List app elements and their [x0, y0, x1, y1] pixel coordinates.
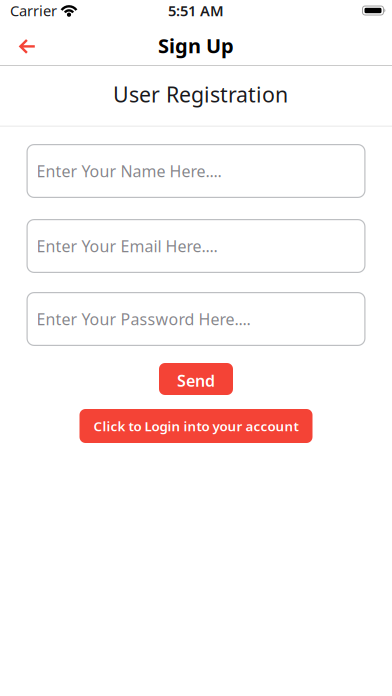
- button[interactable]: Enter Your Email Here....: [26, 219, 365, 273]
- button[interactable]: Enter Your Password Here....: [26, 292, 365, 346]
- button[interactable]: Click to Login into your account: [79, 409, 312, 443]
- staticText: 5:51 AM: [168, 1, 224, 20]
- staticText: Enter Your Password Here....: [36, 308, 250, 330]
- staticText: Enter Your Name Here....: [36, 160, 221, 182]
- staticText: Carrier: [10, 1, 57, 20]
- button[interactable]: Enter Your Name Here....: [26, 144, 365, 198]
- staticText: Send: [177, 370, 215, 391]
- staticText: Sign Up: [158, 32, 234, 59]
- button[interactable]: Back: [0, 21, 43, 65]
- staticText: Click to Login into your account: [93, 417, 298, 435]
- staticText: User Registration: [113, 80, 288, 108]
- staticText: Enter Your Email Here....: [36, 235, 217, 257]
- button[interactable]: Send: [159, 363, 233, 395]
